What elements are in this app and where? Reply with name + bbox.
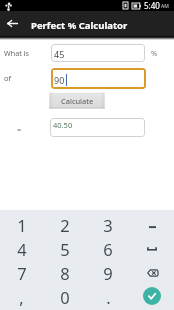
button[interactable]: 45 bbox=[51, 44, 145, 62]
staticText: , bbox=[19, 286, 24, 308]
button[interactable]: 90 bbox=[51, 68, 146, 89]
staticText: 8 bbox=[60, 262, 70, 284]
other: Enter bbox=[143, 287, 161, 305]
staticText: 2 bbox=[60, 214, 70, 236]
staticText: 40.50 bbox=[53, 120, 73, 130]
other: Backspace bbox=[147, 269, 158, 277]
button[interactable]: 8 bbox=[43, 260, 86, 284]
button[interactable]: , bbox=[0, 284, 43, 308]
button[interactable]: 5 bbox=[43, 236, 86, 260]
button[interactable]: 7 bbox=[0, 260, 43, 284]
staticText: 90 bbox=[54, 74, 65, 86]
staticText: of bbox=[4, 73, 12, 83]
button[interactable]: Backspace bbox=[130, 260, 174, 284]
staticText: AM bbox=[161, 3, 169, 10]
staticText: 4 bbox=[17, 238, 27, 260]
other: Minus bbox=[149, 218, 156, 230]
staticText: 9 bbox=[103, 262, 113, 284]
staticText: 1 bbox=[17, 214, 27, 236]
button[interactable]: 9 bbox=[86, 260, 130, 284]
button[interactable]: 3 bbox=[86, 211, 130, 236]
button[interactable]: 4 bbox=[0, 236, 43, 260]
staticText: = bbox=[17, 124, 22, 134]
button[interactable]: Back bbox=[0, 11, 25, 36]
button[interactable]: Enter bbox=[130, 284, 174, 308]
staticText: 45 bbox=[54, 48, 65, 60]
staticText: Perfect % Calculator bbox=[31, 19, 128, 32]
button[interactable]: 0 bbox=[43, 284, 86, 308]
other: Notification bbox=[5, 2, 12, 11]
staticText: 0 bbox=[60, 286, 70, 308]
button[interactable]: 40.50 bbox=[50, 118, 145, 137]
button[interactable]: Calculate bbox=[49, 92, 105, 109]
button[interactable]: 6 bbox=[86, 236, 130, 260]
button[interactable]: 1 bbox=[0, 211, 43, 236]
staticText: 7 bbox=[17, 262, 27, 284]
staticText: 3 bbox=[103, 214, 113, 236]
staticText: 5:40 bbox=[144, 0, 160, 11]
button[interactable]: . bbox=[86, 284, 130, 308]
button[interactable]: Space bbox=[130, 236, 174, 260]
button[interactable]: 2 bbox=[43, 211, 86, 236]
staticText: 6 bbox=[103, 238, 113, 260]
staticText: Calculate bbox=[61, 96, 94, 106]
staticText: 5 bbox=[60, 238, 70, 260]
other: Space bbox=[147, 243, 157, 253]
staticText: . bbox=[106, 286, 111, 308]
staticText: % bbox=[151, 48, 158, 58]
button[interactable]: Minus bbox=[130, 211, 174, 236]
staticText: What is bbox=[4, 48, 29, 58]
